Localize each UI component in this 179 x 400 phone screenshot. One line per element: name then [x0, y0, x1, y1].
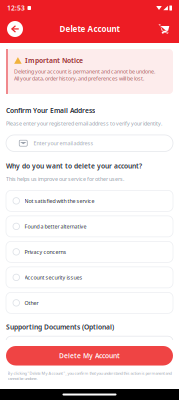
staticText: Enter your email address	[33, 140, 93, 147]
staticText: Found a better alternative	[24, 223, 86, 230]
staticText: By clicking "Delete My Account", you con…	[7, 370, 171, 381]
button[interactable]: Delete My Account	[6, 346, 173, 365]
button[interactable]: Not satisfied with the service	[6, 190, 173, 211]
staticText: Deleting your account is permanent and c…	[14, 68, 155, 82]
button[interactable]: Other	[6, 292, 173, 313]
staticText: Supporting Documents (Optional)	[6, 322, 114, 331]
staticText: 12:53	[7, 4, 25, 12]
button[interactable]: Privacy concerns	[6, 241, 173, 262]
button[interactable]: Found a better alternative	[6, 216, 173, 237]
staticText: Delete Account	[59, 24, 119, 34]
staticText: Confirm Your Email Address	[6, 106, 95, 115]
button[interactable]: Shopping cart	[153, 17, 175, 41]
staticText: Privacy concerns	[24, 248, 66, 255]
staticText: Why do you want to delete your account?	[6, 161, 142, 170]
staticText: Not satisfied with the service	[24, 197, 94, 204]
button[interactable]: Account security issues	[6, 267, 173, 288]
button[interactable]: Back	[4, 17, 26, 41]
staticText: Delete My Account	[59, 351, 120, 360]
staticText: Important Notice	[25, 56, 83, 65]
staticText: Please enter your registered email addre…	[6, 120, 162, 127]
staticText: Account security issues	[24, 274, 82, 281]
staticText: Other	[24, 299, 38, 306]
staticText: This helps us improve our service for ot…	[6, 175, 124, 182]
